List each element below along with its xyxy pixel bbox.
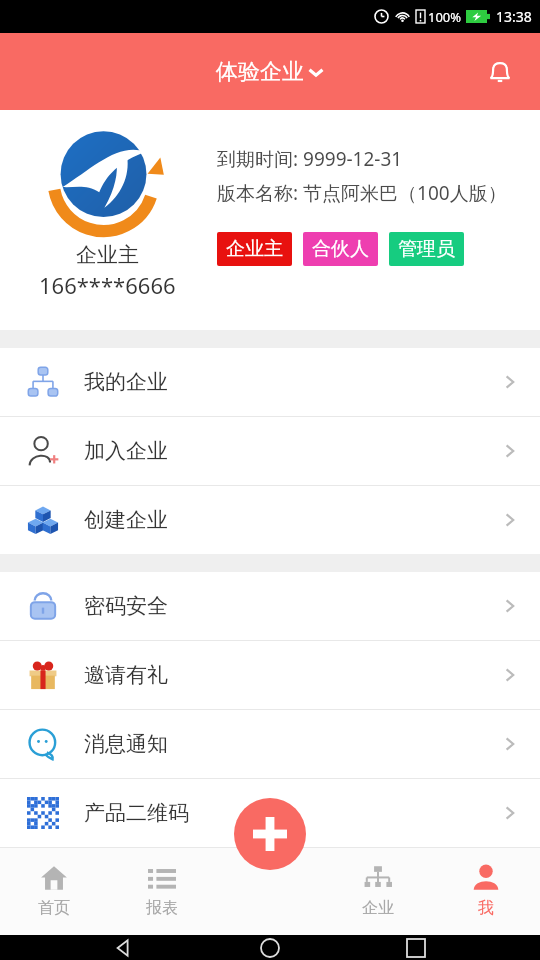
button[interactable]: 产品二维码 (0, 779, 540, 847)
staticText: 企业 (362, 898, 394, 918)
staticText: 我 (478, 898, 494, 918)
button[interactable]: 体验企业 (216, 58, 325, 86)
button[interactable]: 管理员 (389, 232, 464, 266)
button[interactable]: 邀请有礼 (0, 641, 540, 709)
staticText: 首页 (38, 898, 70, 918)
staticText: 消息通知 (84, 731, 168, 757)
button[interactable]: 创建企业 (0, 486, 540, 554)
staticText: 版本名称: 节点阿米巴（100人版） (217, 180, 507, 206)
staticText: 166****6666 (39, 270, 176, 300)
staticText: 13:38 (496, 7, 532, 26)
staticText: 合伙人 (312, 237, 369, 261)
button[interactable]: 我的企业 (0, 348, 540, 416)
staticText: 企业主 (76, 242, 139, 268)
staticText: 到期时间: 9999-12-31 (217, 146, 403, 172)
staticText: 100% (428, 8, 462, 26)
button[interactable]: Home (248, 935, 292, 960)
staticText: 创建企业 (84, 507, 168, 533)
button[interactable]: Back (102, 935, 146, 960)
button[interactable]: 消息通知 (0, 710, 540, 778)
button[interactable]: 合伙人 (303, 232, 378, 266)
button[interactable]: 我 (432, 847, 540, 935)
staticText: 密码安全 (84, 593, 168, 619)
staticText: 产品二维码 (84, 800, 189, 826)
button[interactable]: 首页 (0, 847, 108, 935)
button[interactable]: 企业 (324, 847, 432, 935)
button[interactable]: Add (234, 798, 306, 870)
staticText: 邀请有礼 (84, 662, 168, 688)
staticText: 加入企业 (84, 438, 168, 464)
button[interactable]: 加入企业 (0, 417, 540, 485)
button[interactable]: 密码安全 (0, 572, 540, 640)
button[interactable]: Recents (394, 935, 438, 960)
button[interactable]: Notifications (478, 50, 522, 94)
staticText: 企业主 (226, 237, 283, 261)
staticText: 报表 (146, 898, 178, 918)
button[interactable]: 报表 (108, 847, 216, 935)
staticText: 管理员 (398, 237, 455, 261)
button[interactable]: 企业主 (217, 232, 292, 266)
staticText: 我的企业 (84, 369, 168, 395)
staticText: 体验企业 (216, 58, 304, 86)
